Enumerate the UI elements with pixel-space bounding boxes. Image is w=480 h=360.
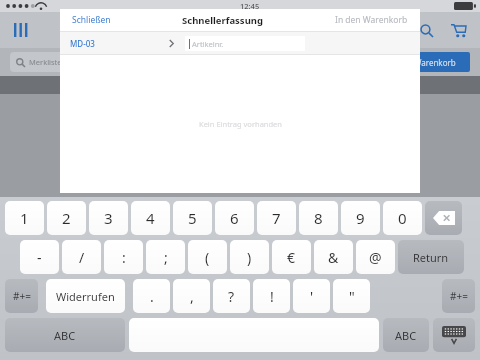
staticText: Return [413,250,449,265]
button[interactable]: ' [293,279,330,313]
staticText: / [79,248,85,267]
button[interactable]: Widerrufen [46,279,125,313]
staticText: #+= [13,289,31,303]
staticText: 4 [146,208,155,228]
staticText: ; [164,248,168,267]
button[interactable]: ABC [5,318,125,352]
button[interactable]: " [333,279,370,313]
button[interactable]: 7 [257,201,296,235]
button[interactable]: 8 [299,201,338,235]
staticText: 12:45 [240,1,260,11]
staticText: : [122,248,126,267]
staticText: Schließen [72,14,111,26]
staticText: - [37,248,42,267]
staticText: 9 [356,208,365,228]
staticText: ABC [395,328,417,343]
button[interactable]: Löschen [425,201,462,235]
staticText: Schnellerfassung [182,14,263,27]
staticText: 6 [230,208,239,228]
button[interactable]: #+= [5,279,38,313]
button[interactable]: Suche [414,18,438,42]
button[interactable]: ) [230,240,269,274]
button[interactable]: ? [213,279,250,313]
button[interactable]: / [62,240,101,274]
button[interactable]: Warenkorb [400,52,470,72]
staticText: Merklisten durchsuchen [29,57,114,67]
button[interactable]: , [173,279,210,313]
staticText: Kein Eintrag vorhanden [199,119,282,129]
staticText: 0 [398,208,407,228]
button[interactable] [129,318,379,352]
button[interactable]: : [104,240,143,274]
button[interactable]: Merklisten durchsuchen [16,52,386,72]
button[interactable]: 9 [341,201,380,235]
button[interactable]: ABC [383,318,429,352]
button[interactable]: € [272,240,311,274]
button[interactable]: ( [188,240,227,274]
staticText: 2 [62,208,71,228]
button[interactable]: 2 [47,201,86,235]
button[interactable]: MD-03 [70,32,175,54]
staticText: & [328,248,339,267]
button[interactable]: Warenkorb [446,18,470,42]
button[interactable]: Schließen [70,12,113,28]
staticText: 3 [104,208,113,228]
staticText: ! [270,287,274,306]
staticText: " [349,287,355,306]
staticText: #+= [450,289,468,303]
staticText: In den Warenkorb [335,14,408,26]
button[interactable]: . [133,279,170,313]
staticText: @ [369,248,382,267]
button[interactable]: Menü [10,19,32,41]
staticText: Warenkorb [414,57,456,68]
staticText: ( [205,248,210,267]
staticText: Widerrufen [56,289,115,304]
staticText: 1 [20,208,29,228]
button[interactable]: ! [253,279,290,313]
button[interactable]: Tastatur ausblenden [433,318,475,352]
button[interactable]: & [314,240,353,274]
button[interactable]: 0 [383,201,422,235]
staticText: 7 [272,208,281,228]
staticText: 8 [314,208,323,228]
button[interactable]: #+= [442,279,475,313]
staticText: € [287,248,296,267]
staticText: ' [310,287,314,306]
button[interactable]: Artikelnr. [189,36,301,51]
button[interactable]: Return [398,240,464,274]
staticText: ABC [54,328,76,343]
button[interactable]: 6 [215,201,254,235]
button[interactable]: ; [146,240,185,274]
button[interactable]: 5 [173,201,212,235]
button[interactable]: 4 [131,201,170,235]
staticText: Artikelnr. [192,39,224,49]
staticText: MD-03 [70,38,95,49]
staticText: 5 [188,208,197,228]
button[interactable]: - [20,240,59,274]
button[interactable]: @ [356,240,395,274]
button[interactable]: 1 [5,201,44,235]
button[interactable]: In den Warenkorb [333,12,410,28]
button[interactable]: 3 [89,201,128,235]
staticText: . [150,287,154,306]
staticText: ) [247,248,252,267]
staticText: ? [228,287,235,306]
staticText: , [190,287,194,306]
